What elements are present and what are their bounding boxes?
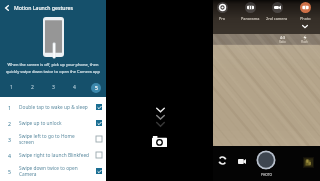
button[interactable]: Gallery [303,157,314,168]
staticText: Flash [301,40,308,44]
staticText: 3 [52,84,55,91]
button[interactable]: 2 [0,115,106,131]
staticText: When the screen is off, pick up your pho… [5,62,101,74]
button[interactable]: 5 [85,81,106,94]
staticText: 4 [8,152,11,159]
staticText: Swipe down twice to open Camera [19,165,91,177]
staticText: Photo [300,16,311,21]
button[interactable]: Pro [210,0,234,26]
button[interactable]: Video [237,157,247,166]
staticText: 4:3 [280,35,286,40]
staticText: 5 [8,168,11,175]
staticText: 1 [10,84,13,91]
button[interactable]: Panorama [238,0,262,26]
staticText: Motion Launch gestures [14,4,73,11]
button[interactable]: Switch camera [216,154,228,166]
staticText: 3 [8,136,11,143]
staticText: 2 [8,120,11,127]
staticText: 2nd camera [266,16,288,21]
staticText: 2 [31,84,34,91]
button[interactable]: 3 [43,81,64,94]
button[interactable]: 2 [22,81,43,94]
button[interactable]: 1 [0,81,22,94]
button[interactable]: 4 [64,81,85,94]
staticText: 4 [73,84,76,91]
button[interactable]: 4 [0,147,106,163]
staticText: Pro [219,16,226,21]
staticText: Swipe up to unlock [19,120,91,127]
staticText: Panorama [241,16,260,21]
button[interactable]: Camera [152,136,167,147]
button[interactable]: Shutter [256,150,276,170]
staticText: 1 [8,104,11,111]
staticText: Swipe left to go to Home screen [19,133,91,145]
staticText: PHOTO [261,173,272,177]
button[interactable]: 5 [0,163,106,179]
button[interactable]: Back [0,0,106,15]
staticText: Swipe right to launch Blinkfeed [19,152,91,159]
button[interactable]: 1 [0,99,106,115]
button[interactable]: Flash [298,35,310,44]
staticText: 5 [95,85,98,92]
button[interactable]: 3 [0,131,106,147]
button[interactable]: 4:3 [276,35,288,44]
staticText: Ratio [279,40,286,44]
button[interactable]: Photo [293,0,317,26]
staticText: Double tap to wake up & sleep [19,104,91,111]
button[interactable]: 2nd camera [265,0,289,26]
button[interactable]: Back [0,0,14,15]
